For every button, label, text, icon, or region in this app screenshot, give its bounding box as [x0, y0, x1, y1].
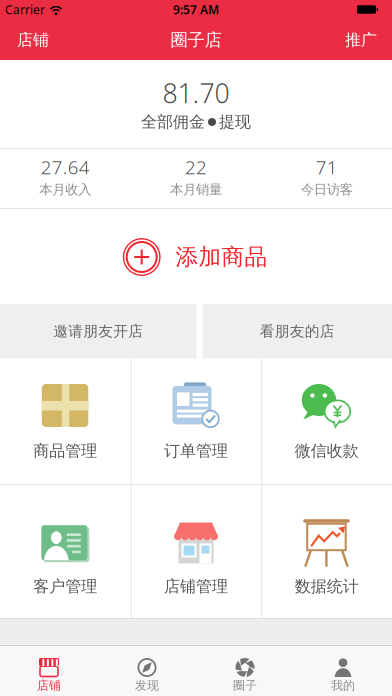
button[interactable]: 圈子: [196, 645, 294, 696]
staticText: 71: [316, 155, 338, 179]
staticText: 添加商品: [175, 243, 267, 271]
staticText: 22: [185, 155, 207, 179]
staticText: 数据统计: [295, 577, 359, 596]
staticText: 店铺: [17, 30, 49, 50]
staticText: 81.70: [162, 75, 229, 111]
staticText: 订单管理: [164, 441, 228, 461]
staticText: 发现: [135, 678, 159, 693]
button[interactable]: 推广: [331, 20, 391, 60]
staticText: 客户管理: [33, 577, 97, 596]
staticText: Carrier: [5, 1, 45, 17]
staticText: 提现: [219, 112, 251, 132]
staticText: 店铺管理: [164, 577, 228, 596]
button[interactable]: 数据统计: [261, 484, 392, 618]
button[interactable]: 店铺: [3, 20, 63, 60]
button[interactable]: 微信收款: [261, 359, 392, 484]
button[interactable]: 客户管理: [0, 484, 131, 618]
staticText: 店铺: [37, 678, 61, 693]
button[interactable]: 添加商品: [123, 235, 273, 279]
button[interactable]: 商品管理: [0, 359, 131, 484]
staticText: 本月销量: [170, 181, 222, 198]
staticText: 9:57 AM: [173, 1, 219, 17]
button[interactable]: 发现: [98, 645, 196, 696]
button[interactable]: 店铺: [0, 645, 98, 696]
button[interactable]: 看朋友的店: [202, 304, 392, 358]
staticText: 看朋友的店: [260, 322, 335, 340]
button[interactable]: 我的: [294, 645, 392, 696]
staticText: 圈子: [233, 678, 257, 693]
button[interactable]: 店铺管理: [131, 484, 261, 618]
staticText: 全部佣金: [141, 112, 205, 132]
staticText: 商品管理: [33, 441, 97, 461]
button[interactable]: 全部佣金: [111, 108, 281, 136]
staticText: 今日访客: [301, 181, 353, 198]
button[interactable]: 订单管理: [131, 359, 261, 484]
staticText: 邀请朋友开店: [53, 322, 143, 340]
staticText: 圈子店: [170, 29, 221, 51]
staticText: 推广: [345, 30, 377, 50]
staticText: 27.64: [41, 155, 90, 179]
staticText: 我的: [331, 678, 355, 693]
staticText: 本月收入: [39, 181, 91, 198]
staticText: 微信收款: [295, 441, 359, 461]
button[interactable]: 邀请朋友开店: [0, 304, 196, 358]
